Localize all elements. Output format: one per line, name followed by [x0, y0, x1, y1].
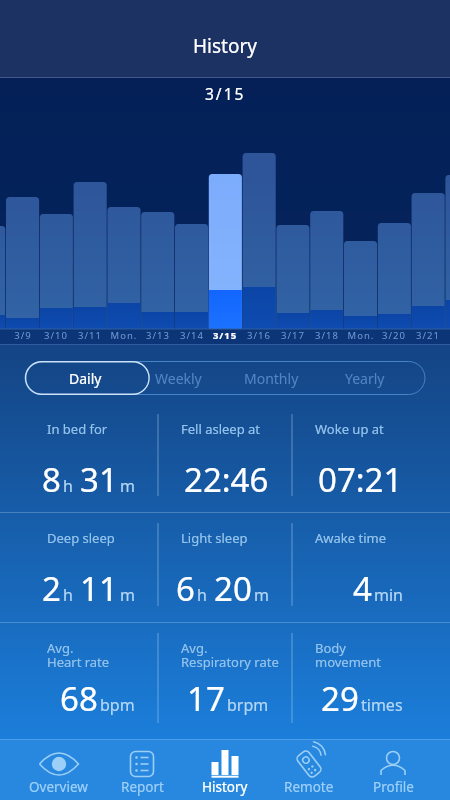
button[interactable]: Avg. Heart rate	[24, 623, 158, 739]
staticText: m	[120, 584, 135, 606]
staticText: 20	[214, 566, 252, 611]
staticText: 4	[353, 566, 372, 611]
staticText: min	[374, 584, 403, 606]
other: Remote	[286, 751, 332, 777]
staticText: Awake time	[315, 529, 387, 547]
staticText: Mon.	[341, 329, 381, 342]
staticText: Report	[121, 778, 164, 796]
staticText: times	[361, 694, 403, 716]
button[interactable]: Monthly	[225, 361, 318, 395]
button[interactable]: Woke up at	[292, 404, 426, 512]
staticText: 07:21	[318, 457, 403, 502]
staticText: Monthly	[244, 369, 299, 388]
staticText: h	[63, 584, 73, 606]
other: Profile	[370, 751, 416, 777]
button[interactable]: Report	[100, 739, 183, 800]
staticText: 3/21	[408, 329, 448, 342]
button[interactable]: Fell asleep at	[158, 404, 292, 512]
button[interactable]: Profile	[351, 739, 435, 800]
staticText: 22:46	[184, 457, 269, 502]
staticText: 3/11	[70, 329, 110, 342]
staticText: 3/16	[239, 329, 279, 342]
staticText: History	[202, 778, 248, 796]
staticText: 3/15	[205, 83, 246, 104]
button[interactable]: Daily	[39, 361, 132, 395]
button[interactable]: Weekly	[132, 361, 225, 395]
staticText: Body movement	[315, 639, 381, 671]
staticText: 3/17	[273, 329, 313, 342]
button[interactable]: In bed for	[24, 404, 158, 512]
staticText: Woke up at	[315, 420, 384, 438]
staticText: 29	[321, 676, 359, 721]
staticText: bpm	[100, 694, 135, 716]
staticText: h	[63, 475, 73, 497]
staticText: 3/15	[205, 329, 245, 342]
button[interactable]: Yearly	[318, 361, 411, 395]
staticText: 8	[42, 457, 61, 502]
staticText: h	[197, 584, 207, 606]
staticText: 31	[80, 457, 118, 502]
button[interactable]: Avg. Respiratory rate	[158, 623, 292, 739]
staticText: Fell asleep at	[181, 420, 261, 438]
staticText: 17	[187, 676, 225, 721]
button[interactable]: Body movement	[292, 623, 426, 739]
staticText: Yearly	[345, 369, 385, 388]
button[interactable]: Light sleep	[158, 513, 292, 622]
staticText: In bed for	[47, 420, 108, 438]
staticText: 2	[42, 566, 61, 611]
staticText: 3/13	[138, 329, 178, 342]
staticText: Overview	[29, 778, 88, 796]
other: History	[202, 751, 248, 777]
staticText: History	[193, 33, 257, 59]
staticText: Deep sleep	[47, 529, 115, 547]
staticText: Light sleep	[181, 529, 248, 547]
staticText: m	[120, 475, 135, 497]
other: Report	[119, 751, 165, 777]
button[interactable]: Remote	[267, 739, 351, 800]
staticText: Remote	[284, 778, 334, 796]
button[interactable]: Overview	[17, 739, 100, 800]
staticText: 68	[60, 676, 98, 721]
staticText: 3/9	[3, 329, 43, 342]
button[interactable]: Deep sleep	[24, 513, 158, 622]
staticText: Avg. Respiratory rate	[181, 639, 279, 671]
other: Overview	[36, 751, 82, 777]
staticText: Avg. Heart rate	[47, 639, 110, 671]
staticText: Weekly	[155, 369, 202, 388]
staticText: 3/14	[172, 329, 212, 342]
staticText: m	[254, 584, 269, 606]
staticText: 3/18	[307, 329, 347, 342]
staticText: Daily	[69, 369, 102, 388]
staticText: Mon.	[104, 329, 144, 342]
staticText: 11	[80, 566, 118, 611]
staticText: 6	[176, 566, 195, 611]
staticText: 3/20	[374, 329, 414, 342]
staticText: 3/10	[36, 329, 76, 342]
button[interactable]: Awake time	[292, 513, 426, 622]
staticText: Profile	[373, 778, 414, 796]
button[interactable]: History	[183, 739, 267, 800]
staticText: brpm	[227, 694, 269, 716]
